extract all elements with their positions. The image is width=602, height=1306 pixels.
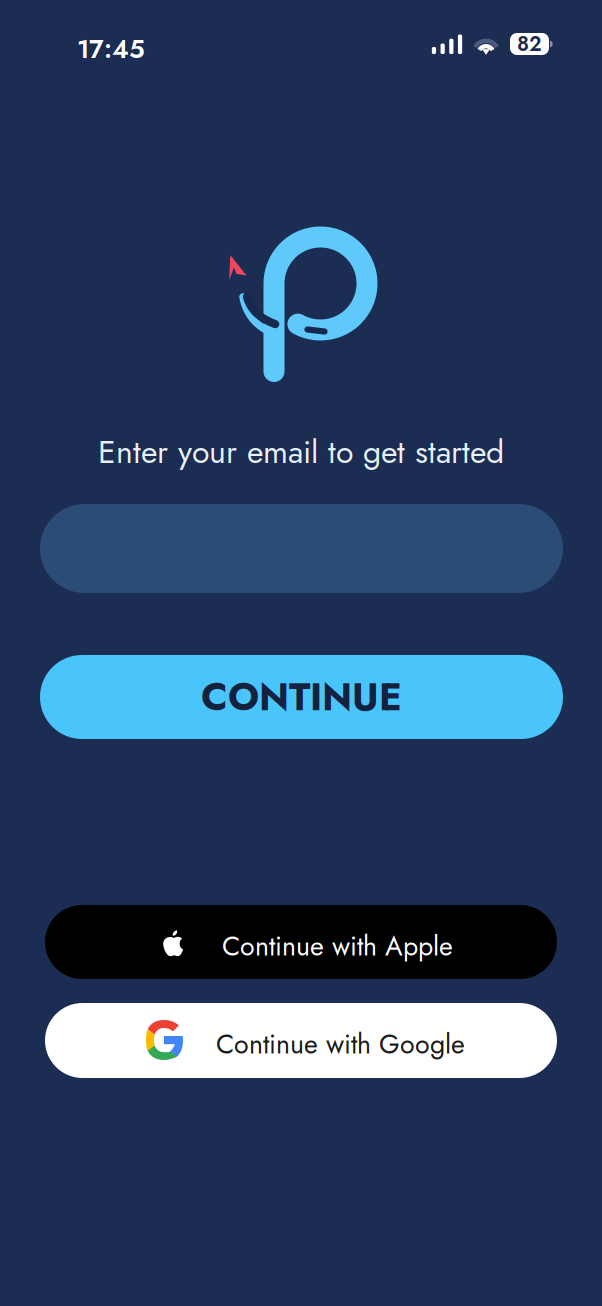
button[interactable]: Continue with Apple [45,905,557,979]
staticText: Continue with Apple [222,927,453,965]
staticText: CONTINUE [201,669,402,724]
staticText: 82 [517,29,542,58]
button[interactable]: CONTINUE [40,655,563,739]
staticText: 17:45 [77,31,145,68]
button[interactable]: Continue with Google [45,1003,557,1078]
staticText: Continue with Google [216,1025,465,1063]
staticText: Enter your email to get started [98,429,504,475]
button[interactable]: Email address [40,504,563,593]
